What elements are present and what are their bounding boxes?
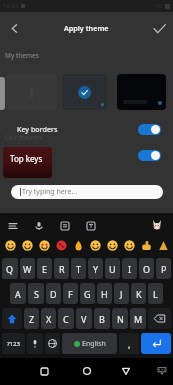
button[interactable]: B xyxy=(94,308,110,329)
button[interactable]: T xyxy=(71,258,86,279)
button[interactable]: , xyxy=(119,333,139,354)
button[interactable]: R xyxy=(54,258,69,279)
button[interactable]: C xyxy=(58,308,74,329)
button[interactable]: Home xyxy=(76,360,98,382)
button[interactable]: English xyxy=(62,333,117,354)
staticText: I xyxy=(128,263,132,275)
staticText: 4G xyxy=(156,3,163,10)
button[interactable]: Enter xyxy=(141,333,171,354)
button[interactable]: V xyxy=(76,308,92,329)
button[interactable]: Voice input xyxy=(32,219,45,232)
button[interactable]: Selected theme xyxy=(62,74,107,110)
button[interactable]: Emoji xyxy=(3,238,17,252)
button[interactable]: Back xyxy=(0,14,28,42)
staticText: J xyxy=(120,288,123,300)
staticText: U xyxy=(109,263,116,275)
button[interactable]: G xyxy=(80,283,95,304)
staticText: W xyxy=(23,263,32,275)
staticText: 10:24 xyxy=(3,2,19,10)
button[interactable]: Key borders xyxy=(0,118,173,140)
button[interactable]: Emoji xyxy=(20,238,34,252)
button[interactable]: Toggle xyxy=(0,144,173,166)
staticText: Key borders xyxy=(17,124,58,134)
button[interactable]: H xyxy=(97,283,112,304)
staticText: N xyxy=(117,313,124,325)
button[interactable]: Emoji xyxy=(88,238,102,252)
button[interactable]: Try typing here... xyxy=(11,185,163,199)
button[interactable]: Change language xyxy=(45,333,60,354)
button[interactable]: F xyxy=(63,283,78,304)
button[interactable]: Menu xyxy=(6,219,19,232)
staticText: L xyxy=(153,288,158,300)
button[interactable]: J xyxy=(114,283,129,304)
staticText: C xyxy=(63,313,69,325)
button[interactable]: Sticker xyxy=(150,218,164,232)
button[interactable]: E xyxy=(37,258,52,279)
staticText: Top keys xyxy=(10,153,43,164)
staticText: Live themes xyxy=(5,133,42,142)
staticText: V xyxy=(81,313,87,325)
button[interactable]: U xyxy=(105,258,120,279)
staticText: A xyxy=(15,288,21,300)
button[interactable]: I xyxy=(122,258,137,279)
staticText: X xyxy=(46,313,52,325)
staticText: G xyxy=(84,288,91,300)
staticText: E xyxy=(42,263,48,275)
staticText: Z xyxy=(29,313,35,325)
button[interactable]: K xyxy=(131,283,146,304)
staticText: My themes xyxy=(5,51,39,60)
button[interactable]: Emoji xyxy=(156,238,170,252)
button[interactable]: Emoji xyxy=(54,238,68,252)
button[interactable]: ?123 xyxy=(2,333,25,354)
button[interactable]: Toggle xyxy=(138,150,161,161)
button[interactable]: X xyxy=(41,308,56,329)
button[interactable]: D xyxy=(46,283,61,304)
button[interactable]: W xyxy=(20,258,35,279)
button[interactable]: N xyxy=(112,308,128,329)
staticText: H xyxy=(101,288,108,300)
staticText: Apply theme xyxy=(64,23,109,33)
staticText: K xyxy=(136,288,142,300)
button[interactable]: Apply xyxy=(145,14,173,42)
button[interactable]: Text editing xyxy=(84,219,97,232)
button[interactable]: Toggle xyxy=(138,124,161,135)
button[interactable]: Emoji xyxy=(71,238,85,252)
button[interactable]: Emoji xyxy=(37,238,51,252)
staticText: B xyxy=(99,313,105,325)
staticText: English xyxy=(82,339,106,349)
button[interactable]: Emoji xyxy=(122,238,136,252)
staticText: M xyxy=(134,313,143,325)
staticText: R xyxy=(59,263,65,275)
button[interactable]: Top keys xyxy=(3,147,52,178)
staticText: Try typing here... xyxy=(22,187,78,197)
button[interactable]: P xyxy=(156,258,171,279)
staticText: S xyxy=(34,288,39,300)
button[interactable]: A xyxy=(10,283,26,304)
button[interactable]: Recent apps xyxy=(33,360,55,382)
staticText: Q xyxy=(6,263,14,275)
button[interactable]: M xyxy=(130,308,146,329)
button[interactable]: O xyxy=(139,258,154,279)
button[interactable]: L xyxy=(148,283,163,304)
button[interactable]: Z xyxy=(24,308,39,329)
staticText: P xyxy=(161,263,167,275)
button[interactable]: Clipboard xyxy=(58,219,71,232)
button[interactable]: Shift xyxy=(2,308,22,329)
staticText: T xyxy=(76,263,82,275)
button[interactable]: Hide keyboard xyxy=(151,360,173,382)
button[interactable]: Back xyxy=(115,360,137,382)
button[interactable]: S xyxy=(28,283,44,304)
staticText: ?123 xyxy=(7,340,20,348)
button[interactable]: Backspace xyxy=(148,308,171,329)
staticText: , xyxy=(128,338,131,350)
button[interactable]: Emoji xyxy=(139,238,153,252)
button[interactable]: Q xyxy=(2,258,18,279)
staticText: F xyxy=(68,288,73,300)
staticText: Y xyxy=(93,263,99,275)
staticText: O xyxy=(143,263,151,275)
button[interactable]: Y xyxy=(88,258,103,279)
button[interactable]: Theme xyxy=(117,74,166,110)
button[interactable]: Emoji xyxy=(105,238,119,252)
button[interactable]: Voice xyxy=(27,333,43,354)
